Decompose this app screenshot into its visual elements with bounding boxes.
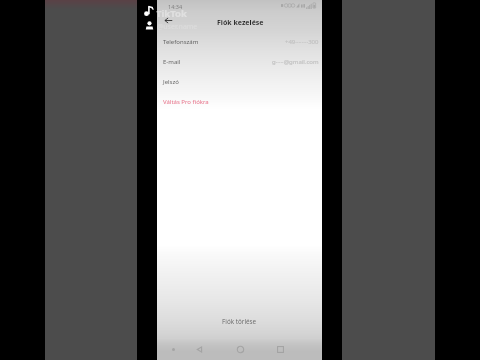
staticText: Fiók kezelése [217,18,264,28]
button[interactable]: Jelszó [157,72,322,92]
staticText: @user.name [157,22,198,32]
staticText: E-mail [163,58,181,66]
button[interactable]: Home [231,338,249,360]
staticText: TikTok [156,7,187,20]
button[interactable]: Back [190,338,208,360]
button[interactable]: Recent apps [271,338,289,360]
button[interactable]: Hide keyboard [165,338,181,360]
button[interactable]: Fiók törlése [157,313,322,330]
staticText: Telefonszám [163,38,199,46]
staticText: Váltás Pro fiókra [163,98,209,106]
staticText: Jelszó [163,78,179,86]
staticText: +49········300 [285,38,319,46]
staticText: 14:34 [168,3,183,10]
button[interactable]: Váltás Pro fiókra [157,92,322,112]
button[interactable]: Back [160,12,176,28]
button[interactable]: E-mail [157,52,322,72]
staticText: g·····@gmail.com [272,58,319,66]
staticText: Fiók törlése [222,317,257,326]
button[interactable]: Telefonszám [157,32,322,52]
